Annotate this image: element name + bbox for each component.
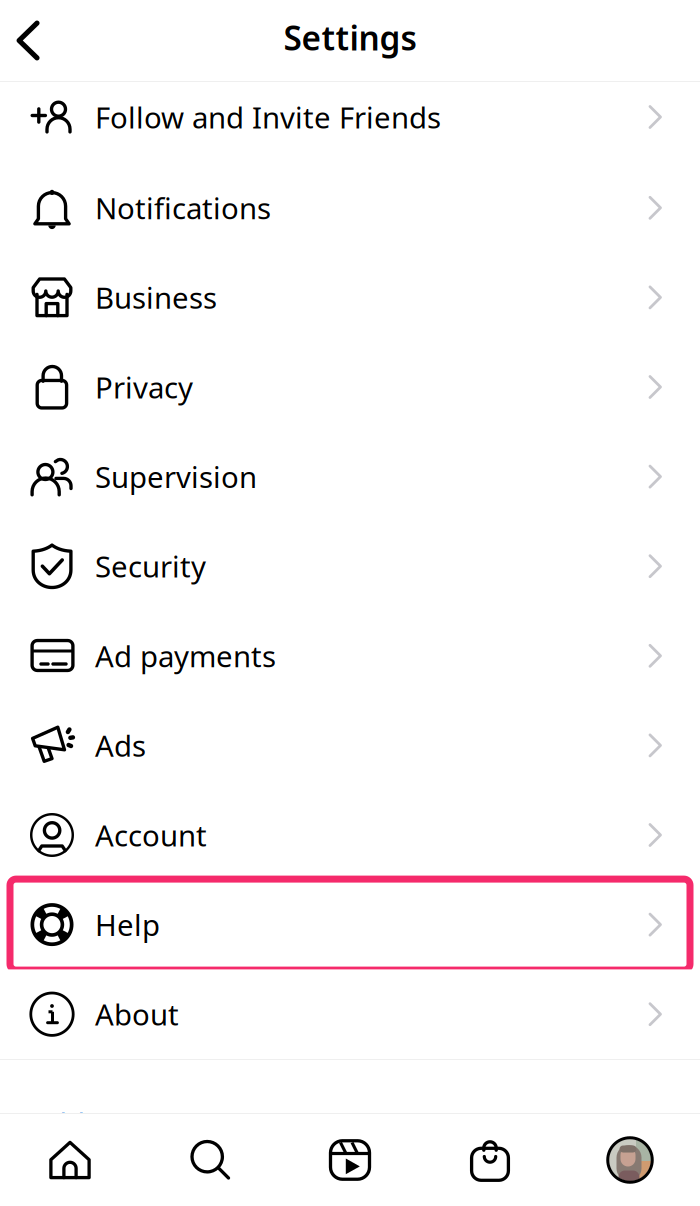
staticText: Add account xyxy=(30,1103,202,1142)
staticText: Supervision xyxy=(95,457,257,496)
staticText: Settings xyxy=(283,15,416,60)
button[interactable]: Account xyxy=(0,790,700,880)
staticText: Privacy xyxy=(95,367,193,406)
staticText: Security xyxy=(95,547,206,586)
button[interactable]: Follow and Invite Friends xyxy=(0,82,700,163)
staticText: Account xyxy=(95,815,207,854)
staticText: Ad payments xyxy=(95,636,276,675)
button[interactable]: About xyxy=(0,969,700,1059)
button[interactable]: Search xyxy=(140,1114,280,1206)
button[interactable]: Reels xyxy=(280,1114,420,1206)
button[interactable]: Add account xyxy=(0,1101,202,1145)
button[interactable]: Security xyxy=(0,521,700,611)
button[interactable]: Privacy xyxy=(0,342,700,432)
button[interactable]: Help xyxy=(0,880,700,969)
button[interactable]: Profile xyxy=(560,1114,700,1206)
button[interactable]: Home xyxy=(0,1114,140,1206)
button[interactable]: Supervision xyxy=(0,432,700,521)
staticText: Follow and Invite Friends xyxy=(95,97,441,136)
button[interactable]: Ads xyxy=(0,701,700,790)
button[interactable]: Notifications xyxy=(0,163,700,253)
staticText: About xyxy=(95,995,179,1034)
staticText: Business xyxy=(95,278,217,317)
button[interactable]: Shop xyxy=(420,1114,560,1206)
staticText: Ads xyxy=(95,726,146,765)
button[interactable]: Ad payments xyxy=(0,611,700,701)
staticText: Help xyxy=(95,905,160,944)
button[interactable]: Business xyxy=(0,253,700,342)
staticText: Notifications xyxy=(95,188,271,227)
button[interactable]: Back xyxy=(0,1,56,79)
